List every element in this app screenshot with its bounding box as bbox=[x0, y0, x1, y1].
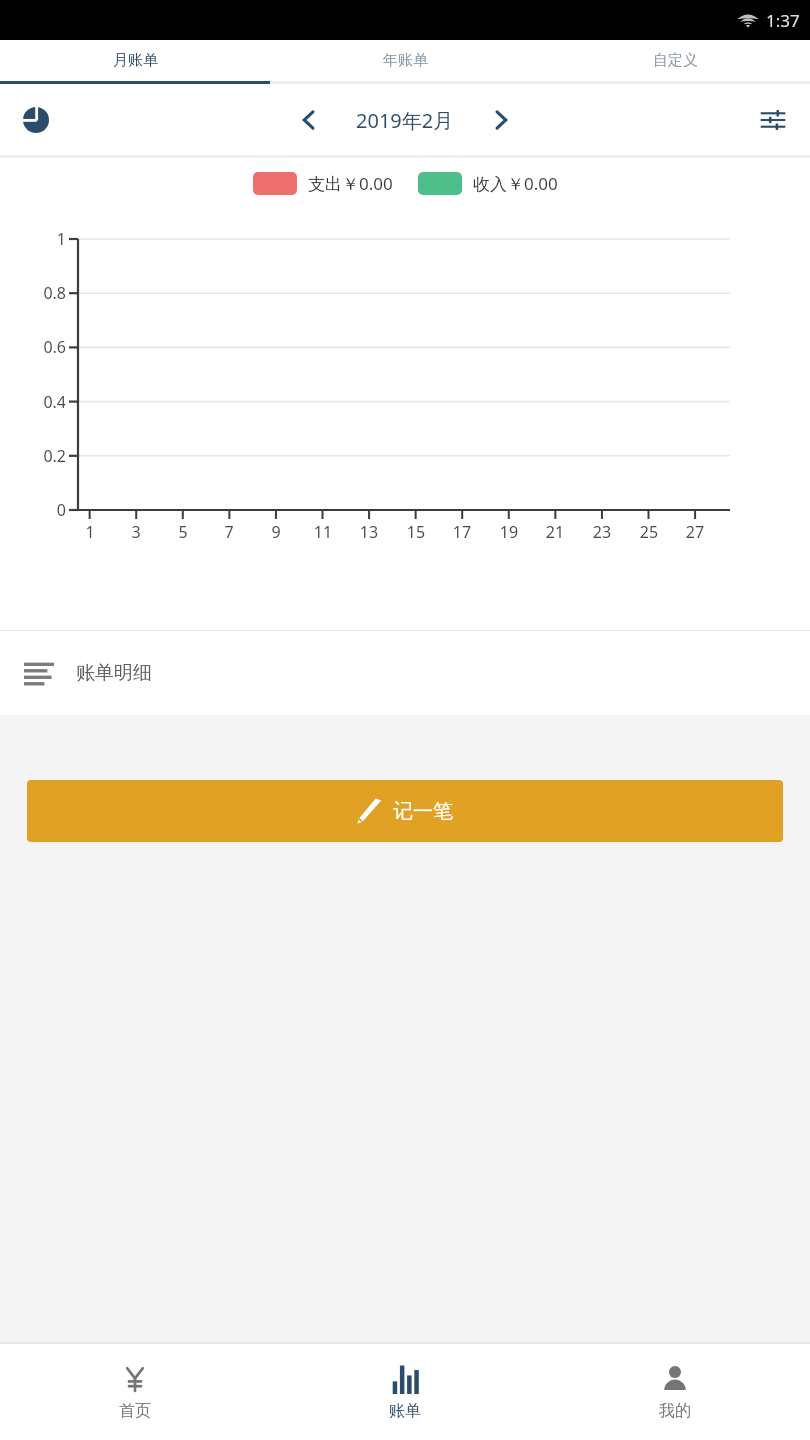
button[interactable]: 账单明细 bbox=[0, 631, 810, 715]
staticText: 13 bbox=[349, 521, 389, 543]
staticText: 19 bbox=[489, 521, 529, 543]
staticText: 1 bbox=[70, 521, 110, 543]
staticText: 账单 bbox=[389, 1401, 421, 1421]
staticText: 收入￥0.00 bbox=[473, 172, 558, 195]
staticText: 23 bbox=[582, 521, 622, 543]
staticText: 17 bbox=[442, 521, 482, 543]
staticText: 我的 bbox=[659, 1401, 691, 1421]
button[interactable]: Filter bbox=[750, 97, 796, 143]
staticText: 1 bbox=[0, 228, 66, 250]
staticText: 27 bbox=[675, 521, 715, 543]
staticText: 0.4 bbox=[0, 391, 66, 413]
staticText: 自定义 bbox=[653, 51, 698, 70]
staticText: 0.2 bbox=[0, 445, 66, 467]
staticText: 账单明细 bbox=[76, 661, 152, 685]
staticText: 1:37 bbox=[766, 9, 800, 32]
button[interactable]: Chart bbox=[14, 98, 58, 142]
button[interactable]: 记一笔 bbox=[27, 780, 783, 842]
staticText: 记一笔 bbox=[393, 799, 453, 824]
staticText: 21 bbox=[535, 521, 575, 543]
staticText: 首页 bbox=[119, 1401, 151, 1421]
staticText: 月账单 bbox=[113, 51, 158, 70]
staticText: 15 bbox=[396, 521, 436, 543]
staticText: 9 bbox=[256, 521, 296, 543]
staticText: 7 bbox=[209, 521, 249, 543]
staticText: 0.8 bbox=[0, 282, 66, 304]
staticText: 2019年2月 bbox=[356, 107, 454, 134]
staticText: 3 bbox=[116, 521, 156, 543]
button[interactable]: Next month bbox=[475, 94, 527, 146]
staticText: 11 bbox=[303, 521, 343, 543]
staticText: 年账单 bbox=[383, 51, 428, 70]
button[interactable]: Previous month bbox=[283, 94, 335, 146]
button[interactable]: 账单 bbox=[270, 1344, 540, 1440]
button[interactable]: 首页 bbox=[0, 1344, 270, 1440]
staticText: 支出￥0.00 bbox=[308, 172, 393, 195]
button[interactable]: 自定义 bbox=[540, 40, 810, 81]
staticText: 0.6 bbox=[0, 336, 66, 358]
button[interactable]: 我的 bbox=[540, 1344, 810, 1440]
staticText: 0 bbox=[0, 499, 66, 521]
staticText: 25 bbox=[629, 521, 669, 543]
button[interactable]: 年账单 bbox=[270, 40, 540, 81]
button[interactable]: 月账单 bbox=[0, 40, 270, 81]
staticText: 5 bbox=[163, 521, 203, 543]
